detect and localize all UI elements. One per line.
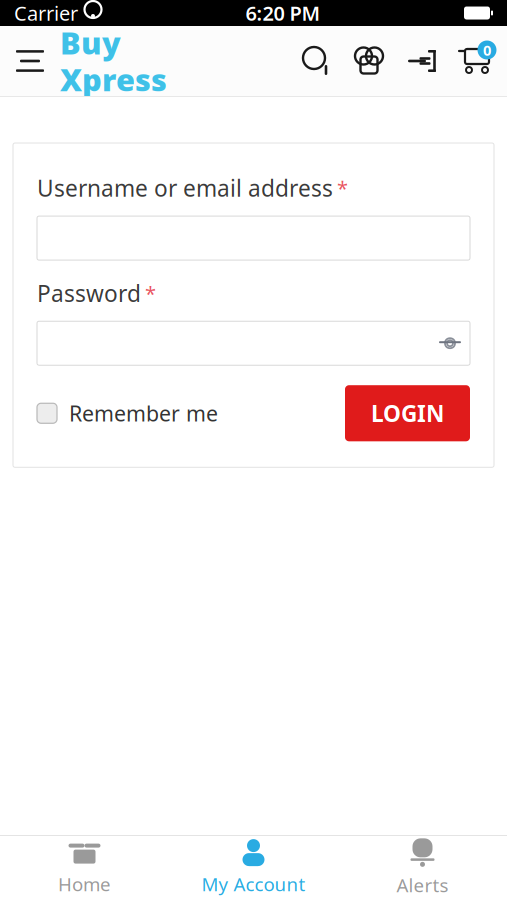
button[interactable]: My Account (169, 830, 338, 900)
button[interactable]: Cart, 0 items (447, 33, 501, 89)
button[interactable]: Search (291, 33, 343, 89)
staticText: Password (37, 278, 141, 308)
button[interactable]: Alerts (338, 829, 507, 900)
staticText: My Account (201, 872, 305, 896)
staticText: Xpress (60, 59, 167, 100)
button[interactable]: Home (0, 830, 169, 900)
staticText: LOGIN (371, 398, 444, 428)
staticText: Buy (60, 22, 121, 63)
staticText: Alerts (396, 873, 448, 897)
staticText: Remember me (69, 399, 218, 427)
button[interactable]: Show password (430, 323, 470, 363)
button[interactable]: Sign in (395, 33, 447, 89)
staticText: Carrier (14, 0, 78, 26)
button[interactable]: Remember me (37, 391, 218, 435)
staticText: Home (58, 872, 111, 896)
staticText: * (337, 175, 348, 201)
button[interactable]: Menu (6, 33, 54, 89)
staticText: * (145, 280, 156, 306)
button[interactable]: BuyXpress home (54, 22, 167, 100)
button[interactable]: LOGIN (345, 385, 470, 441)
staticText: 6:20 PM (245, 0, 320, 26)
button[interactable]: Wishlist (343, 33, 395, 89)
staticText: Username or email address (37, 173, 333, 203)
staticText: 0 (483, 40, 491, 60)
